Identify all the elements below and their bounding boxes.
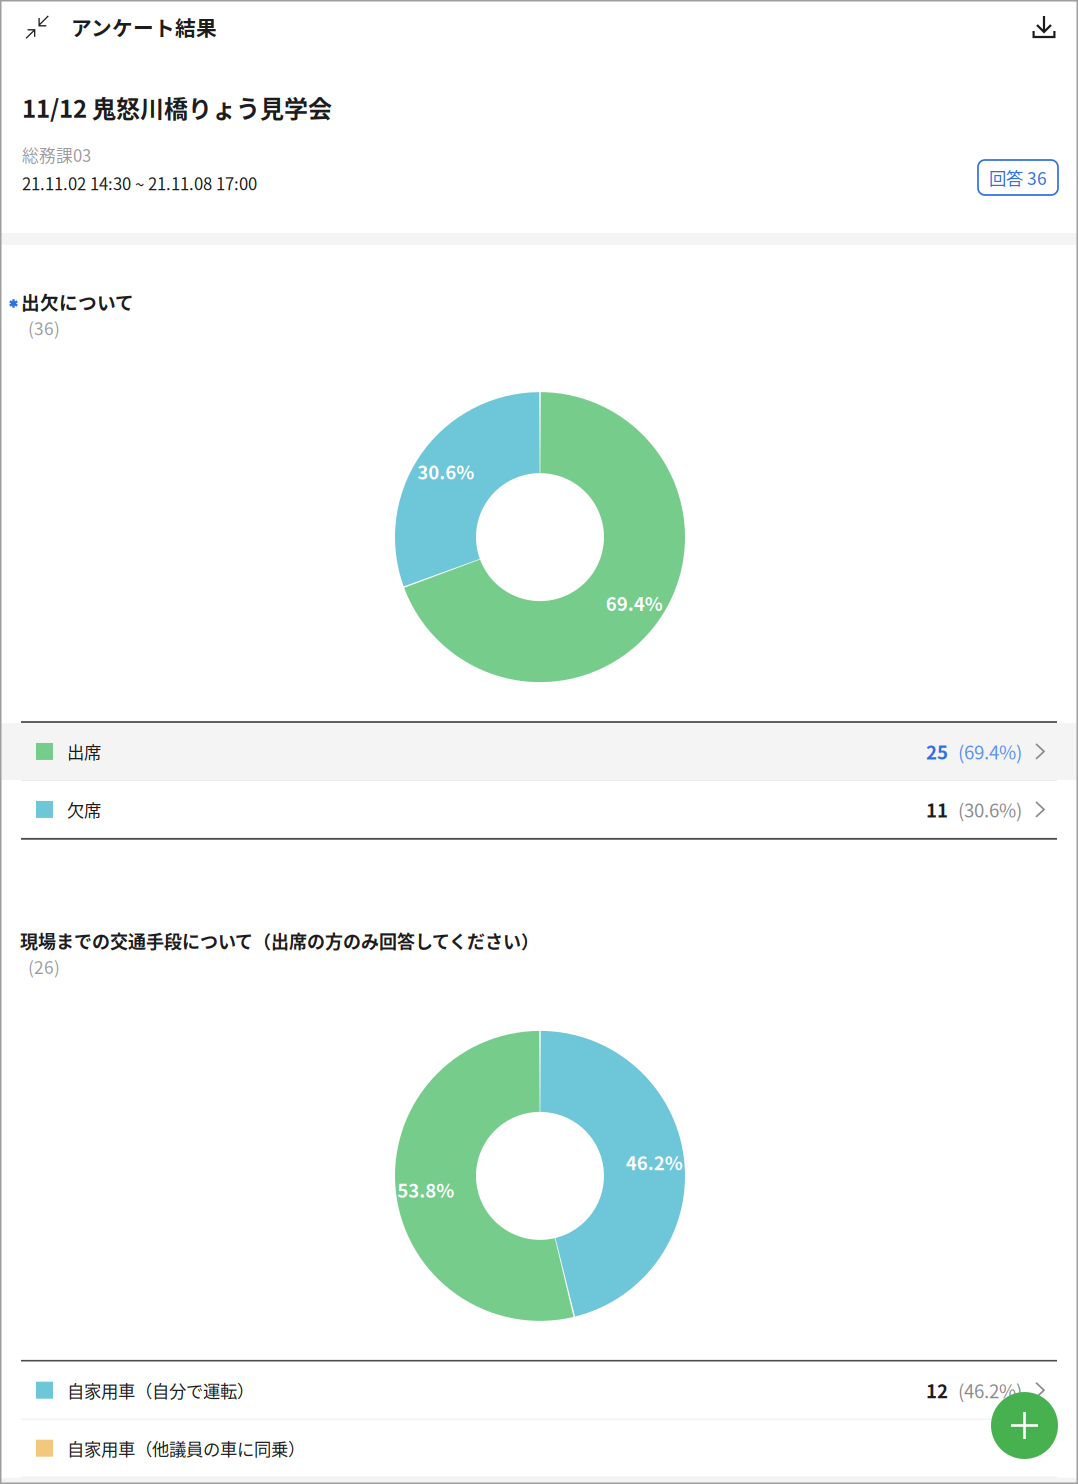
staticText: アンケート結果 (71, 12, 217, 42)
button[interactable]: 欠席 (0, 781, 1078, 838)
staticText: 30.6% (417, 458, 474, 485)
staticText: 出欠について (21, 288, 134, 315)
button[interactable]: Add (991, 1392, 1058, 1459)
staticText: 欠席 (67, 797, 101, 822)
staticText: 46.2% (626, 1149, 683, 1176)
staticText: (69.4%) (958, 738, 1022, 765)
staticText: 25 (926, 738, 948, 765)
button[interactable]: Collapse (0, 0, 71, 54)
staticText: 自家用車（自分で運転） (67, 1378, 254, 1403)
staticText: 11/12 鬼怒川橋りょう見学会 (22, 90, 332, 125)
staticText: 出席 (67, 739, 101, 764)
staticText: 21.11.02 14:30 ~ 21.11.08 17:00 (22, 171, 257, 195)
button[interactable]: 自家用車（自分で運転） (0, 1362, 1078, 1419)
button[interactable]: Download (1010, 0, 1078, 54)
staticText: 自家用車（他議員の車に同乗） (67, 1436, 305, 1461)
staticText: 53.8% (397, 1176, 454, 1203)
staticText: (26) (28, 954, 60, 979)
staticText: (46.2%) (958, 1377, 1022, 1404)
staticText: 回答 36 (989, 165, 1047, 190)
button[interactable]: 回答 36 (978, 160, 1058, 195)
staticText: 69.4% (606, 589, 663, 616)
staticText: (36) (28, 315, 60, 340)
staticText: 現場までの交通手段について（出席の方のみ回答してください） (20, 928, 539, 954)
button[interactable]: 自家用車（他議員の車に同乗） (0, 1420, 1078, 1477)
staticText: (30.6%) (958, 796, 1022, 823)
staticText: 総務課03 (22, 143, 91, 167)
staticText: 12 (926, 1377, 948, 1404)
button[interactable]: 出席 (0, 723, 1078, 780)
staticText: 11 (926, 796, 948, 823)
